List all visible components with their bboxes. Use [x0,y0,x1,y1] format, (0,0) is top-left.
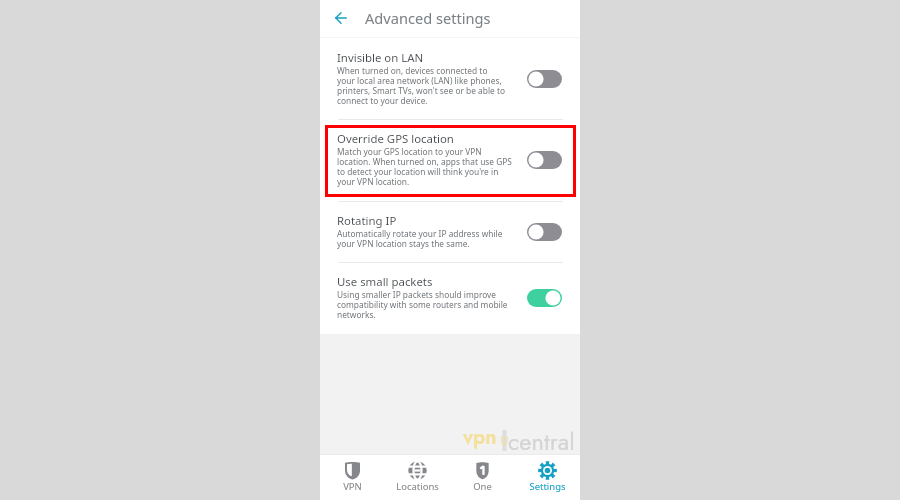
staticText: Settings [529,480,566,493]
button[interactable]: Toggle on [527,289,562,307]
staticText: VPN [343,480,362,493]
button[interactable]: VPN [320,455,385,500]
button[interactable]: Invisible on LAN [320,38,580,119]
staticText: vpn [463,422,497,451]
button[interactable]: Rotating IP [320,201,580,262]
button[interactable]: One [450,455,515,500]
button[interactable]: Locations [385,455,450,500]
staticText: central [508,425,575,459]
button[interactable]: Toggle off [527,70,562,88]
button[interactable]: Toggle off [527,151,562,169]
button[interactable]: Settings [515,455,580,500]
staticText: One [473,480,492,493]
staticText: When turned on, devices connected to you… [337,65,505,106]
staticText: Advanced settings [365,8,491,28]
button[interactable]: Back [328,5,354,31]
staticText: Using smaller IP packets should improve … [337,289,508,320]
staticText: Match your GPS location to your VPN loca… [337,146,512,187]
button[interactable]: Toggle off [527,223,562,241]
button[interactable]: Use small packets [320,262,580,334]
staticText: Rotating IP [337,213,397,229]
staticText: Automatically rotate your IP address whi… [337,228,503,249]
staticText: Locations [396,480,439,493]
staticText: Use small packets [337,274,433,290]
staticText: Invisible on LAN [337,50,424,66]
button[interactable]: Override GPS location [320,119,580,201]
staticText: Override GPS location [337,131,454,147]
